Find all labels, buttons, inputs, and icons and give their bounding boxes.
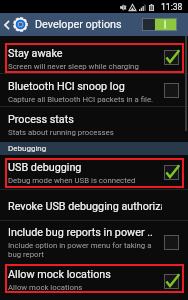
- staticText: bug report: [8, 250, 44, 259]
- staticText: Include option in power menu for taking …: [8, 241, 152, 250]
- button[interactable]: Stay awake: [0, 41, 188, 74]
- staticText: Stats about running processes: [8, 128, 114, 137]
- button[interactable]: Bluetooth HCI snoop log: [0, 74, 188, 107]
- button[interactable]: Bluetooth HCI snoop log: [164, 83, 179, 98]
- button[interactable]: Include bug reports in power ..: [164, 235, 179, 250]
- button[interactable]: Include bug reports in power ..: [0, 221, 188, 263]
- staticText: Stay awake: [8, 47, 63, 60]
- button[interactable]: Allow mock locations: [0, 263, 188, 300]
- staticText: Debug mode when USB is connected: [8, 176, 136, 185]
- staticText: USB debugging: [8, 161, 82, 174]
- staticText: Bluetooth HCI snoop log: [8, 80, 125, 93]
- button[interactable]: USB debugging: [164, 165, 179, 180]
- button[interactable]: Stay awake: [164, 50, 179, 65]
- button[interactable]: Allow mock locations: [164, 274, 179, 289]
- staticText: Allow mock locations: [8, 283, 83, 292]
- staticText: Allow mock locations: [8, 268, 111, 281]
- button[interactable]: Back: [0, 13, 13, 36]
- staticText: Capture all Bluetooth HCI packets in a f…: [8, 95, 154, 104]
- staticText: Screen will never sleep while charging: [8, 62, 139, 71]
- staticText: Include bug reports in power ..: [8, 226, 153, 239]
- staticText: Developer options: [35, 18, 122, 31]
- button[interactable]: Process stats: [0, 107, 188, 142]
- staticText: Debugging: [8, 144, 47, 153]
- staticText: Process stats: [8, 113, 74, 126]
- staticText: 11:38: [161, 2, 183, 12]
- button[interactable]: Revoke USB debugging authoriza..: [0, 190, 188, 221]
- button[interactable]: USB debugging: [0, 155, 188, 190]
- button[interactable]: Developer options on: [142, 18, 177, 31]
- staticText: Revoke USB debugging authoriza..: [8, 200, 162, 213]
